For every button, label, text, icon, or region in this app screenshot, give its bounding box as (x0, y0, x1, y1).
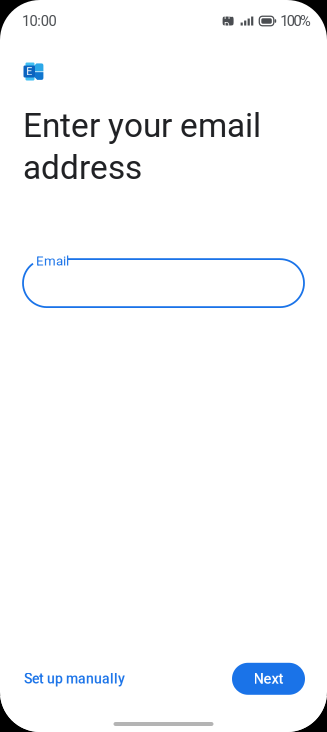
staticText: 10:00 (22, 12, 56, 30)
staticText: HD (224, 11, 232, 31)
staticText: Set up manually (24, 671, 125, 687)
staticText: Enter your email address (23, 106, 261, 187)
button[interactable]: Next (232, 663, 305, 695)
staticText: E (26, 65, 32, 78)
staticText: 100% (280, 12, 311, 30)
staticText: Email (36, 253, 69, 269)
staticText: Next (253, 670, 283, 687)
button[interactable]: Set up manually (15, 662, 134, 696)
